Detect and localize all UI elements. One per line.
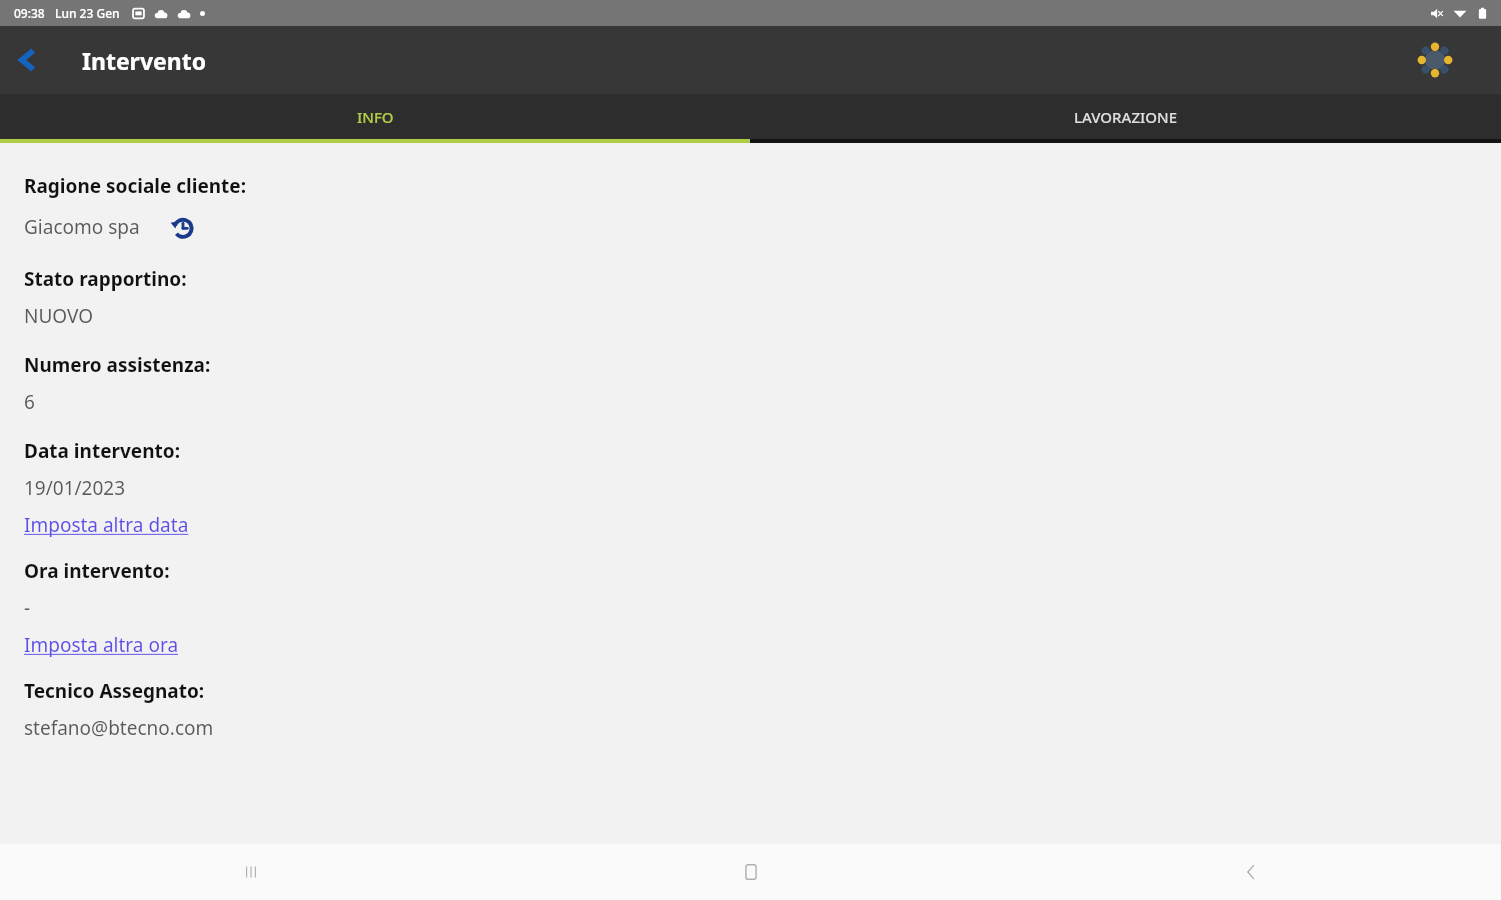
staticText: Ragione sociale cliente: bbox=[24, 173, 247, 199]
staticText: NUOVO bbox=[24, 303, 94, 329]
button[interactable]: Imposta altra data bbox=[24, 512, 189, 538]
button[interactable]: Back bbox=[4, 36, 52, 84]
staticText: INFO bbox=[357, 107, 394, 127]
button[interactable]: Home bbox=[501, 844, 1001, 900]
button[interactable]: LAVORAZIONE bbox=[750, 94, 1501, 139]
staticText: Imposta altra ora bbox=[24, 632, 179, 658]
staticText: Tecnico Assegnato: bbox=[24, 678, 205, 704]
staticText: LAVORAZIONE bbox=[1074, 107, 1178, 127]
staticText: Ora intervento: bbox=[24, 558, 170, 584]
staticText: Giacomo spa bbox=[24, 214, 140, 240]
staticText: Lun 23 Gen bbox=[55, 5, 120, 21]
button[interactable]: App logo bbox=[1411, 36, 1459, 84]
staticText: 19/01/2023 bbox=[24, 475, 126, 501]
staticText: Imposta altra data bbox=[24, 512, 189, 538]
staticText: Data intervento: bbox=[24, 438, 180, 464]
staticText: Intervento bbox=[82, 45, 207, 76]
staticText: stefano@btecno.com bbox=[24, 715, 214, 741]
staticText: - bbox=[24, 595, 31, 621]
button[interactable]: INFO bbox=[0, 94, 750, 139]
button[interactable]: Cronologia cliente bbox=[166, 210, 200, 244]
staticText: 09:38 bbox=[14, 5, 45, 21]
staticText: Numero assistenza: bbox=[24, 352, 211, 378]
button[interactable]: Imposta altra ora bbox=[24, 632, 179, 658]
staticText: 6 bbox=[24, 389, 35, 415]
staticText: Stato rapportino: bbox=[24, 266, 187, 292]
